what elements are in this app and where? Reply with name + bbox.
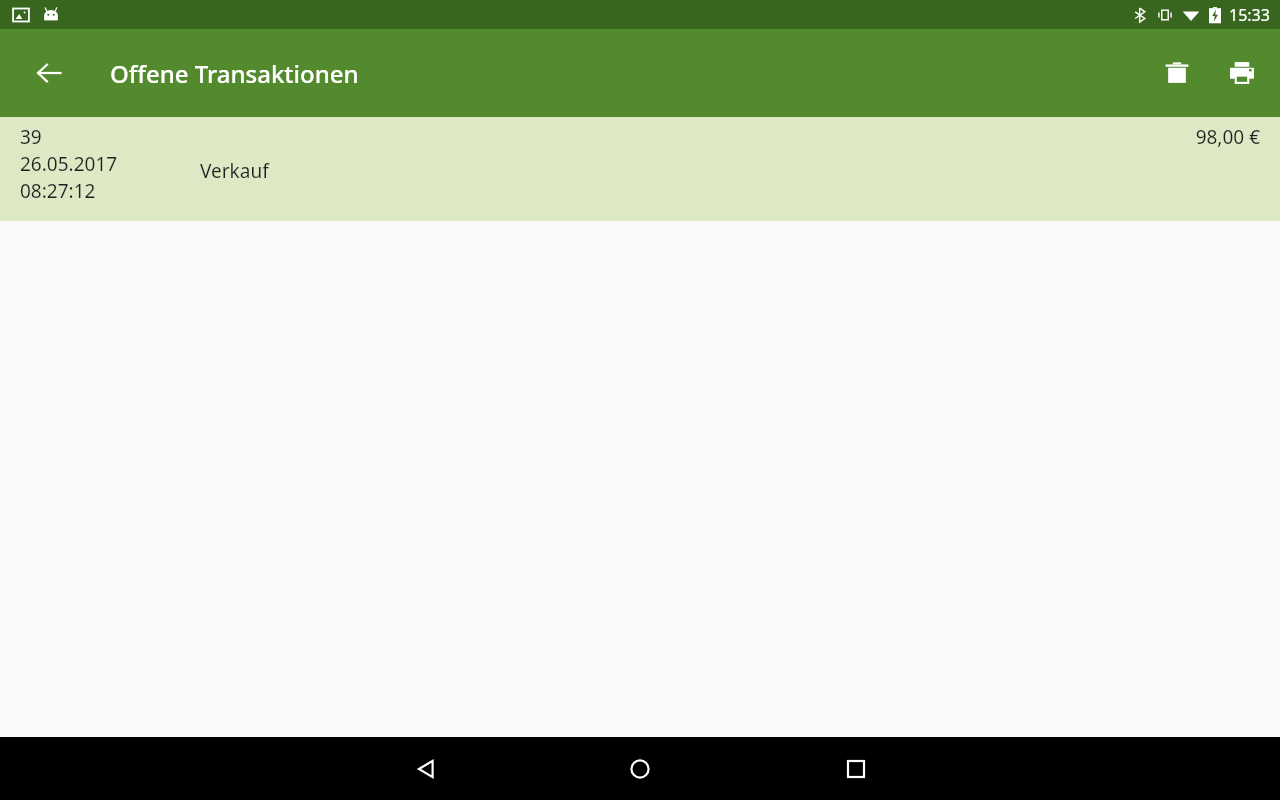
- button[interactable]: 39: [0, 117, 1280, 221]
- staticText: Offene Transaktionen: [110, 57, 359, 90]
- button[interactable]: Delete: [1153, 49, 1201, 97]
- staticText: 98,00 €: [1195, 124, 1260, 150]
- button[interactable]: Recent apps: [832, 745, 880, 793]
- staticText: 15:33: [1229, 4, 1270, 26]
- button[interactable]: Back: [402, 745, 450, 793]
- button[interactable]: Home: [616, 745, 664, 793]
- staticText: 08:27:12: [20, 178, 96, 204]
- staticText: 39: [20, 124, 42, 150]
- button[interactable]: Print: [1218, 49, 1266, 97]
- staticText: Verkauf: [200, 158, 269, 184]
- button[interactable]: Back: [25, 49, 73, 97]
- staticText: 26.05.2017: [20, 151, 118, 177]
